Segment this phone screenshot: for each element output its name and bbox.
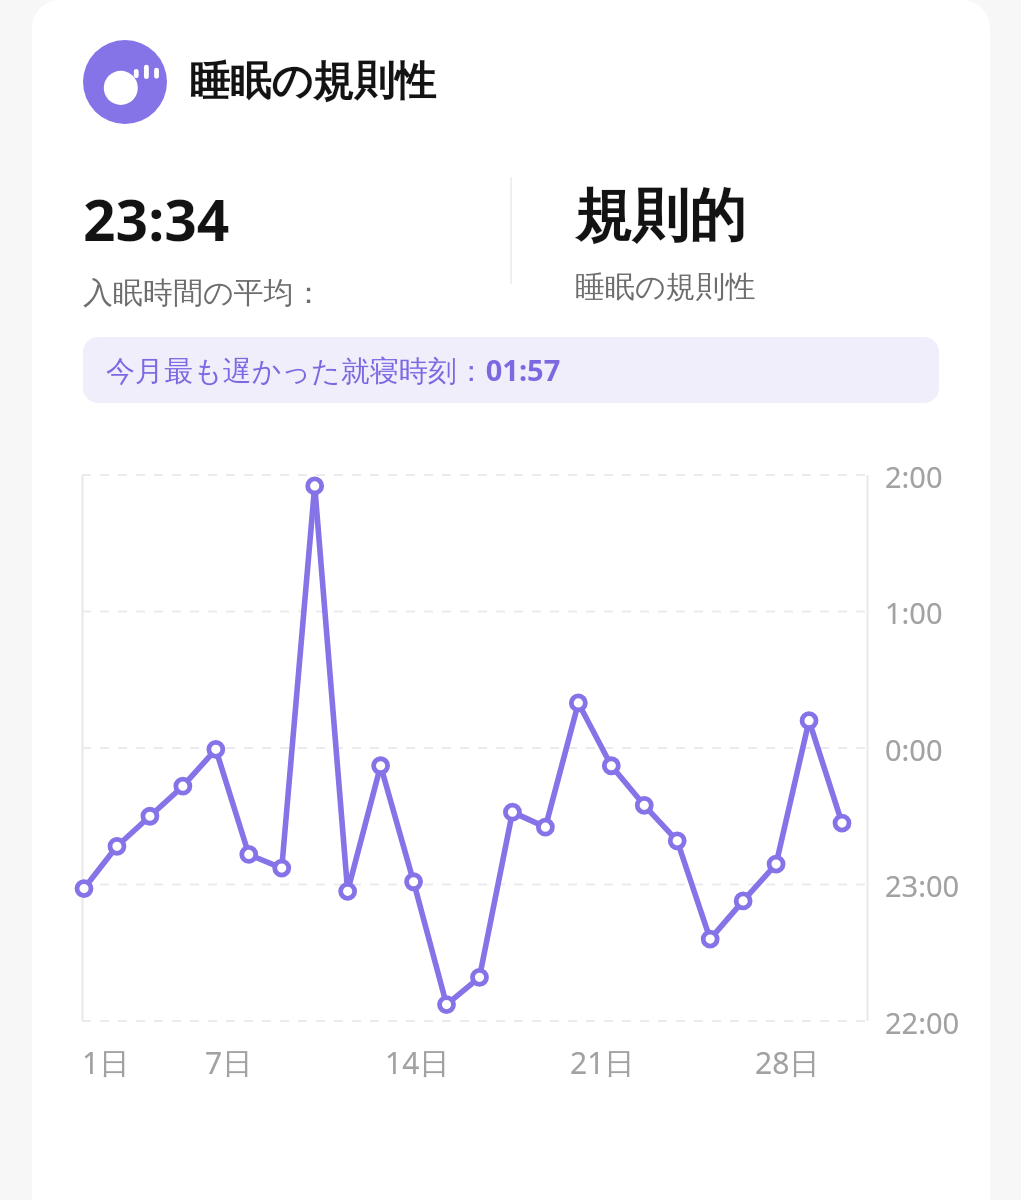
staticText: 今月最も遅かった就寝時刻：01:57 xyxy=(106,350,561,390)
staticText: 入眠時間の平均： xyxy=(83,274,324,312)
staticText: 14日 xyxy=(385,1042,450,1083)
button[interactable]: Sleep regularity xyxy=(83,40,436,124)
staticText: 1:00 xyxy=(885,593,943,632)
staticText: 睡眠の規則性 xyxy=(575,268,756,306)
staticText: 21日 xyxy=(570,1042,635,1083)
staticText: 7日 xyxy=(205,1042,253,1083)
button[interactable]: 規則的 xyxy=(563,176,963,312)
staticText: 睡眠の規則性 xyxy=(189,56,436,108)
other: Sleep regularity xyxy=(83,40,167,124)
button[interactable]: 今月最も遅かった就寝時刻：01:57 xyxy=(83,337,939,403)
staticText: 22:00 xyxy=(885,1003,960,1042)
staticText: 23:00 xyxy=(885,866,960,905)
staticText: 0:00 xyxy=(885,730,943,769)
staticText: 23:34 xyxy=(83,180,230,258)
staticText: 規則的 xyxy=(575,180,746,252)
staticText: 28日 xyxy=(755,1042,820,1083)
staticText: 2:00 xyxy=(885,457,943,496)
staticText: 1日 xyxy=(82,1042,130,1083)
button[interactable]: 23:34 xyxy=(71,176,491,318)
